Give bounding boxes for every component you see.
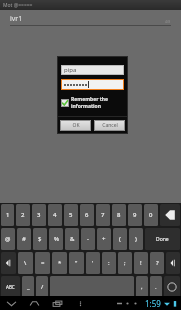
button[interactable]: , [136,276,148,298]
staticText: ! [140,259,142,267]
button[interactable]: # [17,228,31,250]
staticText: + [102,235,106,243]
button[interactable]: ? [150,252,164,274]
staticText: ' [92,259,94,267]
staticText: = [41,259,45,267]
button[interactable]: Remember the information [61,96,128,110]
button[interactable]: $ [33,228,47,250]
staticText: 2 [21,211,25,219]
staticText: - [87,235,89,243]
button[interactable]: Recents [52,298,63,309]
button[interactable]: 2 [16,204,30,226]
button[interactable]: : [102,252,116,274]
button[interactable]: @ [1,228,15,250]
button[interactable]: pipa [61,65,124,75]
staticText: 1 [6,211,10,219]
button[interactable]: Backspace [160,204,180,226]
staticText: . [155,283,157,291]
staticText: 6 [85,211,89,219]
button[interactable]: / [36,276,48,298]
staticText: , [141,283,143,291]
staticText: 3 [37,211,41,219]
button[interactable]: 1 [1,204,14,226]
staticText: ? [156,259,159,267]
button[interactable]: ' [86,252,100,274]
staticText: 9 [133,211,137,219]
button[interactable]: 9 [128,204,142,226]
staticText: 4/8 [165,19,171,24]
staticText: & [70,235,75,243]
button[interactable]: - [81,228,95,250]
staticText: _ [27,283,30,291]
staticText: Remember the information [71,96,128,110]
button[interactable]: OK [60,120,91,131]
staticText: Done [156,236,169,243]
staticText: ABC [6,284,15,290]
button[interactable]: Emoji [164,276,180,298]
staticText: : [108,259,110,267]
button[interactable]: " [69,252,84,274]
button[interactable]: ! [134,252,148,274]
button[interactable]: 0 [144,204,158,226]
button[interactable]: Done [145,228,180,250]
button[interactable]: & [65,228,79,250]
button[interactable]: 3 [32,204,46,226]
staticText: OK [72,122,80,129]
button[interactable]: 8 [112,204,126,226]
staticText: ivr1 [10,14,23,24]
button[interactable] [61,79,124,90]
staticText: # [22,235,26,243]
button[interactable]: Back [6,298,17,309]
staticText: Mot @===== [3,2,33,9]
staticText: " [75,259,78,267]
button[interactable]: = [35,252,50,274]
button[interactable]: Home [29,298,40,309]
button[interactable]: 6 [80,204,94,226]
button[interactable]: ; [118,252,132,274]
staticText: pipa [64,66,77,74]
staticText: * [58,259,62,267]
button[interactable]: _ [22,276,34,298]
button[interactable]: * [52,252,67,274]
button[interactable]: ABC [1,276,20,298]
staticText: 4 [53,211,57,219]
staticText: 7 [101,211,105,219]
staticText: \ [24,259,27,267]
button[interactable]: 5 [64,204,78,226]
button[interactable]: Shift left [1,252,16,274]
staticText: ) [135,235,137,243]
staticText: / [41,283,44,291]
button[interactable]: Menu [75,298,86,309]
button[interactable]: + [97,228,111,250]
button[interactable]: Shift right [166,252,180,274]
staticText: $ [38,235,42,243]
button[interactable]: % [49,228,63,250]
button[interactable]: . [150,276,162,298]
button[interactable]: \ [18,252,33,274]
button[interactable]: 7 [96,204,110,226]
staticText: @ [5,235,11,243]
staticText: 0 [149,211,153,219]
staticText: 1:59 [145,298,161,309]
staticText: % [54,235,59,243]
button[interactable]: ( [113,228,127,250]
staticText: ( [119,235,121,243]
button[interactable] [50,276,134,298]
staticText: Cancel [102,122,118,129]
button[interactable]: 4 [48,204,62,226]
button[interactable]: ) [129,228,143,250]
staticText: 5 [69,211,73,219]
staticText: ; [124,259,126,267]
button[interactable]: Cancel [94,120,125,131]
staticText: 8 [117,211,121,219]
